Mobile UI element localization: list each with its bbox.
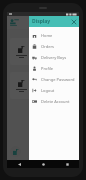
staticText: Delete Account [41, 99, 70, 104]
staticText: Display [32, 18, 51, 25]
button[interactable]: Delivery Boys [29, 52, 79, 63]
button[interactable]: Display [29, 16, 79, 27]
staticText: Home [41, 33, 53, 38]
button[interactable]: Home [31, 160, 55, 168]
button[interactable] [10, 38, 33, 65]
button[interactable] [7, 16, 79, 160]
staticText: Orders [41, 44, 54, 49]
button[interactable]: Home [29, 30, 79, 41]
button[interactable]: Profile [29, 63, 79, 74]
button[interactable]: Orders [29, 41, 79, 52]
staticText: Logout [41, 88, 55, 93]
button[interactable]: Logout [29, 85, 79, 96]
staticText: Change Password [41, 77, 75, 82]
button[interactable]: Delete Account [29, 96, 79, 107]
staticText: Profile [41, 66, 54, 71]
button[interactable]: Change Password [29, 74, 79, 85]
button[interactable]: Recents [55, 160, 79, 168]
button[interactable]: App logo [9, 17, 20, 28]
button[interactable] [10, 72, 33, 99]
staticText: Delivery Boys [41, 55, 67, 60]
button[interactable]: Close drawer [70, 18, 77, 25]
button[interactable]: Add order [10, 146, 21, 157]
button[interactable]: Back [7, 160, 31, 168]
